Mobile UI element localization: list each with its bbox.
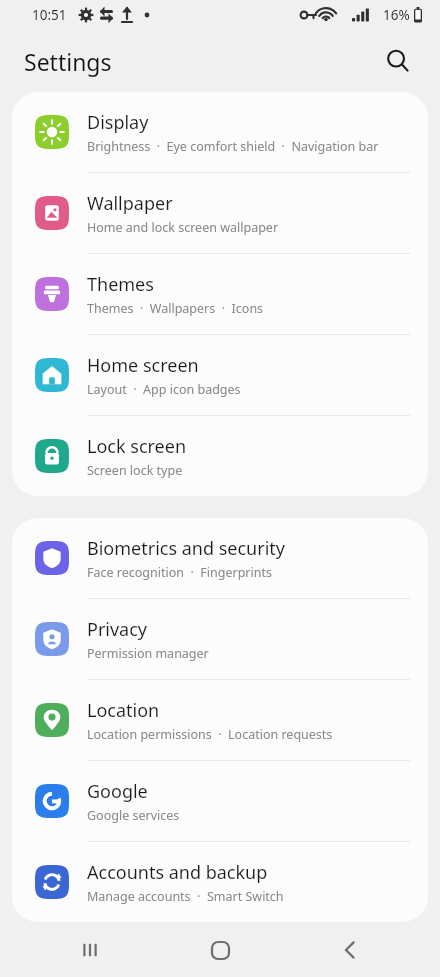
- staticText: Display: [87, 110, 149, 135]
- staticText: Privacy: [87, 617, 148, 642]
- staticText: Layout · App icon badges: [87, 381, 241, 398]
- button[interactable]: Display: [12, 92, 428, 173]
- staticText: Settings: [24, 46, 112, 77]
- button[interactable]: Accounts and backup: [12, 842, 428, 922]
- staticText: Brightness · Eye comfort shield · Naviga…: [87, 138, 379, 155]
- button[interactable]: Biometrics and security: [12, 518, 428, 599]
- button[interactable]: Location: [12, 680, 428, 761]
- button[interactable]: Search: [376, 39, 420, 83]
- staticText: Screen lock type: [87, 462, 183, 479]
- staticText: Face recognition · Fingerprints: [87, 564, 272, 581]
- button[interactable]: Lock screen: [12, 416, 428, 496]
- button[interactable]: Home: [180, 923, 260, 977]
- staticText: Biometrics and security: [87, 536, 285, 561]
- staticText: Themes · Wallpapers · Icons: [87, 300, 264, 317]
- staticText: Location permissions · Location requests: [87, 726, 333, 743]
- button[interactable]: Wallpaper: [12, 173, 428, 254]
- staticText: Themes: [87, 272, 154, 297]
- staticText: Wallpaper: [87, 191, 173, 216]
- staticText: Home and lock screen wallpaper: [87, 219, 279, 236]
- staticText: Google services: [87, 807, 180, 824]
- staticText: Lock screen: [87, 434, 187, 459]
- staticText: 16%: [383, 6, 410, 24]
- button[interactable]: Themes: [12, 254, 428, 335]
- staticText: Permission manager: [87, 645, 209, 662]
- button[interactable]: Privacy: [12, 599, 428, 680]
- staticText: Manage accounts · Smart Switch: [87, 888, 284, 905]
- button[interactable]: Recent apps: [50, 923, 130, 977]
- button[interactable]: Back: [310, 923, 390, 977]
- staticText: Accounts and backup: [87, 860, 268, 885]
- button[interactable]: Google: [12, 761, 428, 842]
- staticText: 10:51: [32, 6, 67, 24]
- staticText: Home screen: [87, 353, 199, 378]
- staticText: Location: [87, 698, 160, 723]
- button[interactable]: Home screen: [12, 335, 428, 416]
- staticText: Google: [87, 779, 148, 804]
